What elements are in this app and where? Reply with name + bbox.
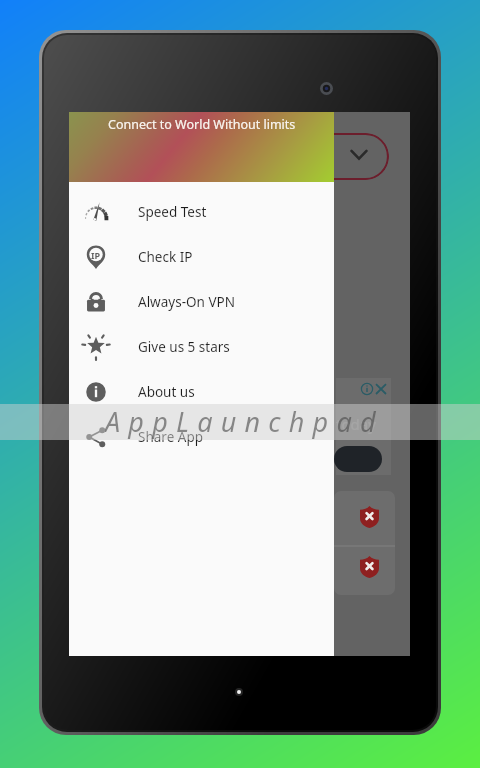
button[interactable]: Share App <box>69 414 334 459</box>
staticText: Connect to World Without limits <box>108 116 296 133</box>
staticText: Check IP <box>138 248 193 266</box>
button[interactable]: Give us 5 stars <box>69 324 334 369</box>
staticText: Speed Test <box>138 203 207 221</box>
staticText: Give us 5 stars <box>138 338 230 356</box>
button[interactable]: About us <box>69 369 334 414</box>
button[interactable]: Speed Test <box>69 189 334 234</box>
staticText: Share App <box>138 428 203 446</box>
staticText: About us <box>138 383 195 401</box>
button[interactable]: IP <box>69 234 334 279</box>
button[interactable]: Expand server list <box>303 133 389 180</box>
staticText: IP <box>91 249 101 261</box>
staticText: today <box>336 414 376 434</box>
staticText: Always-On VPN <box>138 293 235 311</box>
staticText: AppLaunchpad <box>105 403 384 439</box>
button[interactable]: Always-On VPN <box>69 279 334 324</box>
